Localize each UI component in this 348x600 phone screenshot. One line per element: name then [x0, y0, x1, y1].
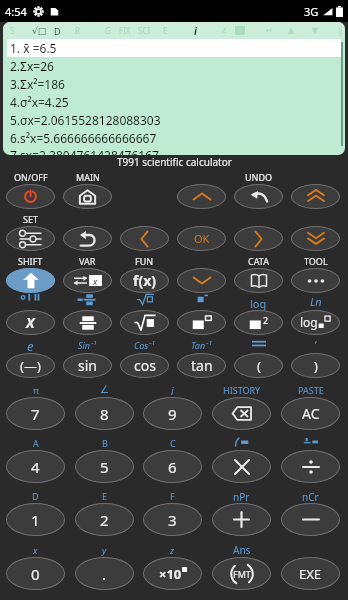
button[interactable]: 4 — [6, 450, 65, 483]
staticText: ▲ — [288, 26, 295, 35]
staticText: HISTORY — [223, 384, 261, 396]
button[interactable]: Format — [212, 557, 271, 590]
staticText: 3.Σx²=186 — [10, 76, 65, 92]
button[interactable]: Catalog — [234, 268, 283, 293]
button[interactable]: 2 — [75, 503, 134, 536]
staticText: nPr — [233, 490, 250, 504]
staticText: CATA — [248, 255, 269, 267]
button[interactable]: OK — [177, 226, 226, 251]
staticText: T991 scientific calculator — [117, 155, 232, 168]
button[interactable]: Decimal point — [75, 557, 134, 590]
button[interactable]: Multiply — [212, 450, 271, 483]
staticText: OK — [194, 231, 210, 246]
button[interactable]: Fraction — [63, 310, 112, 335]
staticText: S — [10, 25, 15, 36]
button[interactable]: Plus — [212, 503, 271, 536]
staticText: x — [93, 275, 98, 286]
staticText: ∠ — [100, 384, 109, 396]
button[interactable]: Variables — [63, 268, 112, 293]
staticText: 8 — [100, 404, 109, 424]
button[interactable]: Functions — [120, 268, 169, 293]
button[interactable]: Delete — [212, 397, 271, 430]
staticText: 4:54 — [5, 4, 27, 19]
button[interactable]: 3 — [143, 503, 202, 536]
staticText: y — [102, 544, 107, 556]
staticText: C — [170, 437, 176, 449]
button[interactable]: Times ten to the power — [143, 557, 202, 590]
button[interactable]: Up — [177, 184, 226, 209]
button[interactable]: Negative — [6, 353, 55, 378]
staticText: . — [102, 564, 107, 584]
staticText: nCr — [302, 490, 319, 504]
button[interactable]: Sine — [63, 353, 112, 378]
staticText: G — [105, 25, 111, 36]
staticText: 2 — [263, 314, 269, 326]
staticText: FMT — [233, 568, 251, 580]
button[interactable]: Left — [120, 226, 169, 251]
button[interactable]: 9 — [143, 397, 202, 430]
button[interactable]: Tangent — [177, 353, 226, 378]
button[interactable]: 5 — [75, 450, 134, 483]
staticText: A — [33, 437, 39, 449]
button[interactable]: Tools — [291, 268, 340, 293]
button[interactable]: Settings — [6, 226, 55, 251]
button[interactable]: Open bracket — [234, 353, 283, 378]
button[interactable]: Page up — [291, 184, 340, 209]
staticText: Cos⁻¹ — [134, 339, 155, 351]
staticText: SCI — [138, 25, 151, 36]
button[interactable]: Close bracket — [291, 353, 340, 378]
staticText: ▼ — [312, 26, 319, 35]
staticText: ( — [257, 357, 261, 375]
staticText: i — [171, 384, 174, 398]
button[interactable]: Square root — [120, 310, 169, 335]
staticText: 2.Σx=26 — [10, 58, 54, 74]
button[interactable]: 6 — [143, 450, 202, 483]
button[interactable]: Shift — [6, 268, 55, 293]
staticText: sin — [78, 356, 97, 375]
staticText: Ln — [310, 294, 322, 309]
staticText: 4.σ²x=4.25 — [10, 94, 69, 110]
staticText: i — [194, 24, 197, 38]
button[interactable]: Back — [63, 226, 112, 251]
button[interactable]: Log — [291, 310, 340, 335]
button[interactable]: Main — [63, 184, 112, 209]
staticText: ↵ — [266, 26, 273, 35]
button[interactable]: Minus — [281, 503, 340, 536]
staticText: VAR — [79, 255, 96, 267]
staticText: AC — [302, 404, 320, 423]
button[interactable]: 1 — [6, 503, 65, 536]
staticText: 5 — [100, 457, 109, 477]
button[interactable]: X — [6, 310, 55, 335]
staticText: SHIFT — [18, 255, 43, 267]
button[interactable]: Cosine — [120, 353, 169, 378]
staticText: log — [250, 296, 267, 311]
button[interactable]: Right — [234, 226, 283, 251]
staticText: ) — [314, 357, 318, 375]
staticText: 7 — [31, 404, 40, 424]
button[interactable]: 0 — [6, 557, 65, 590]
staticText: 4 — [31, 457, 40, 477]
button[interactable]: 8 — [75, 397, 134, 430]
staticText: 5.σx=2.0615528128088303 — [10, 112, 161, 128]
staticText: D — [54, 25, 61, 37]
button[interactable]: Undo — [234, 184, 283, 209]
staticText: e — [27, 337, 34, 355]
staticText: ON/OFF — [14, 171, 48, 183]
button[interactable]: Execute — [281, 557, 340, 590]
staticText: B — [102, 437, 108, 449]
staticText: F — [170, 490, 175, 502]
button[interactable]: 7 — [6, 397, 65, 430]
button[interactable]: Square — [234, 310, 283, 335]
staticText: 6.s²x=5.666666666666667 — [10, 130, 157, 146]
button[interactable]: Divide — [281, 450, 340, 483]
staticText: ×10 — [159, 565, 182, 583]
staticText: FUN — [135, 255, 154, 267]
button[interactable]: Power — [177, 310, 226, 335]
staticText: E — [163, 25, 168, 36]
staticText: π — [33, 384, 39, 396]
button[interactable]: Page down — [291, 226, 340, 251]
button[interactable]: On Off — [6, 184, 55, 209]
button[interactable]: Down — [177, 268, 226, 293]
staticText: (—) — [20, 357, 41, 375]
button[interactable]: All clear — [281, 397, 340, 430]
